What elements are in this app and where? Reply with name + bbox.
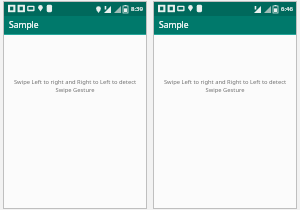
staticText: 6:46 <box>281 5 293 13</box>
staticText: Swipe Left to right and Right to Left to… <box>13 78 137 94</box>
button[interactable]: Swipe Left to right and Right to Left to… <box>3 35 147 209</box>
button[interactable]: Sample <box>153 16 297 34</box>
button[interactable]: Sample <box>3 16 147 34</box>
staticText: Sample <box>9 19 39 31</box>
staticText: Swipe Left to right and Right to Left to… <box>163 78 287 94</box>
button[interactable]: Swipe Left to right and Right to Left to… <box>153 35 297 209</box>
staticText: Sample <box>159 19 189 31</box>
staticText: 8:39 <box>131 5 143 13</box>
